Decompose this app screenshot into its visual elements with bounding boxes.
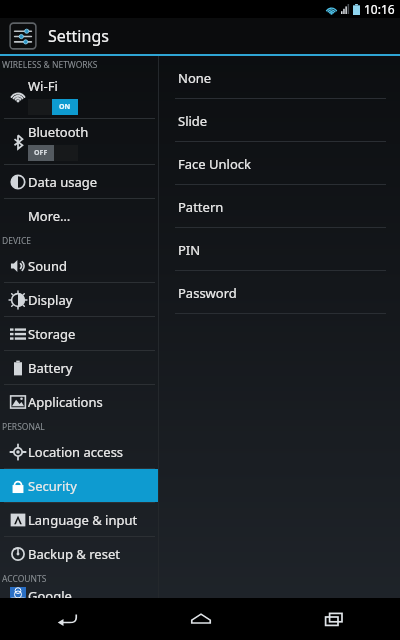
staticText: None [178, 69, 212, 87]
button[interactable]: Home [134, 598, 267, 640]
button[interactable]: Wi-Fi [0, 73, 158, 118]
button[interactable]: Applications [0, 385, 158, 418]
button[interactable]: Back [0, 598, 134, 640]
button[interactable]: Display [0, 283, 158, 316]
button[interactable]: Location access [0, 435, 158, 468]
staticText: 10:16 [364, 1, 395, 17]
staticText: WIRELESS & NETWORKS [2, 59, 98, 71]
staticText: Security [28, 477, 77, 495]
button[interactable]: Password [159, 271, 400, 314]
staticText: Applications [28, 393, 103, 411]
staticText: Settings [48, 25, 109, 47]
staticText: Location access [28, 443, 124, 461]
staticText: PERSONAL [2, 421, 45, 433]
button[interactable]: ON [28, 99, 78, 115]
staticText: Display [28, 291, 73, 309]
staticText: ON [59, 102, 71, 112]
button[interactable]: Backup & reset [0, 537, 158, 570]
button[interactable]: Face Unlock [159, 142, 400, 185]
button[interactable]: Data usage [0, 165, 158, 198]
staticText: Face Unlock [178, 155, 251, 173]
button[interactable]: OFF [28, 145, 78, 161]
staticText: Language & input [28, 511, 138, 529]
staticText: PIN [178, 241, 201, 259]
staticText: Pattern [178, 198, 224, 216]
button[interactable]: Sound [0, 249, 158, 282]
button[interactable]: Recent apps [267, 598, 400, 640]
button[interactable]: None [159, 56, 400, 99]
staticText: Backup & reset [28, 545, 120, 563]
staticText: Storage [28, 325, 76, 343]
staticText: Password [178, 284, 237, 302]
staticText: Bluetooth [28, 123, 89, 141]
button[interactable]: Bluetooth [0, 119, 158, 164]
staticText: DEVICE [2, 235, 32, 247]
staticText: Slide [178, 112, 208, 130]
staticText: Google [28, 587, 72, 598]
staticText: More… [28, 207, 71, 225]
button[interactable]: PIN [159, 228, 400, 271]
staticText: Wi-Fi [28, 77, 58, 95]
button[interactable]: Google [0, 587, 158, 598]
staticText: Sound [28, 257, 68, 275]
button[interactable]: Language & input [0, 503, 158, 536]
button[interactable]: Slide [159, 99, 400, 142]
button[interactable]: Pattern [159, 185, 400, 228]
staticText: Data usage [28, 173, 98, 191]
button[interactable]: Storage [0, 317, 158, 350]
staticText: ACCOUNTS [2, 573, 47, 585]
staticText: Battery [28, 359, 73, 377]
staticText: OFF [34, 148, 48, 158]
button[interactable]: Security [0, 469, 158, 502]
button[interactable]: Battery [0, 351, 158, 384]
button[interactable]: More… [0, 199, 158, 232]
